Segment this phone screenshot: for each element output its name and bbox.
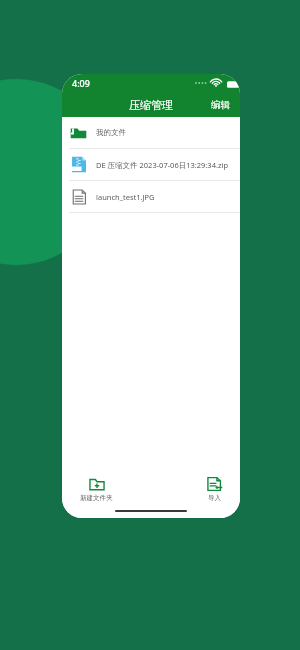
button[interactable]: 导入 [202, 472, 226, 506]
staticText: 压缩管理 [129, 98, 173, 112]
staticText: launch_test1.JPG [96, 192, 155, 202]
staticText: 导入 [208, 494, 221, 502]
staticText: 4:09 [72, 77, 90, 89]
button[interactable]: 我的文件 [62, 117, 240, 149]
staticText: 我的文件 [96, 128, 126, 137]
staticText: 编辑 [211, 99, 230, 111]
button[interactable]: launch_test1.JPG [62, 181, 240, 213]
staticText: 新建文件夹 [80, 494, 113, 502]
button[interactable]: DE 压缩文件 2023-07-06日13:29:34.zip [62, 149, 240, 181]
staticText: DE 压缩文件 2023-07-06日13:29:34.zip [96, 160, 229, 170]
button[interactable]: 编辑 [201, 95, 240, 115]
button[interactable]: 新建文件夹 [76, 472, 117, 506]
